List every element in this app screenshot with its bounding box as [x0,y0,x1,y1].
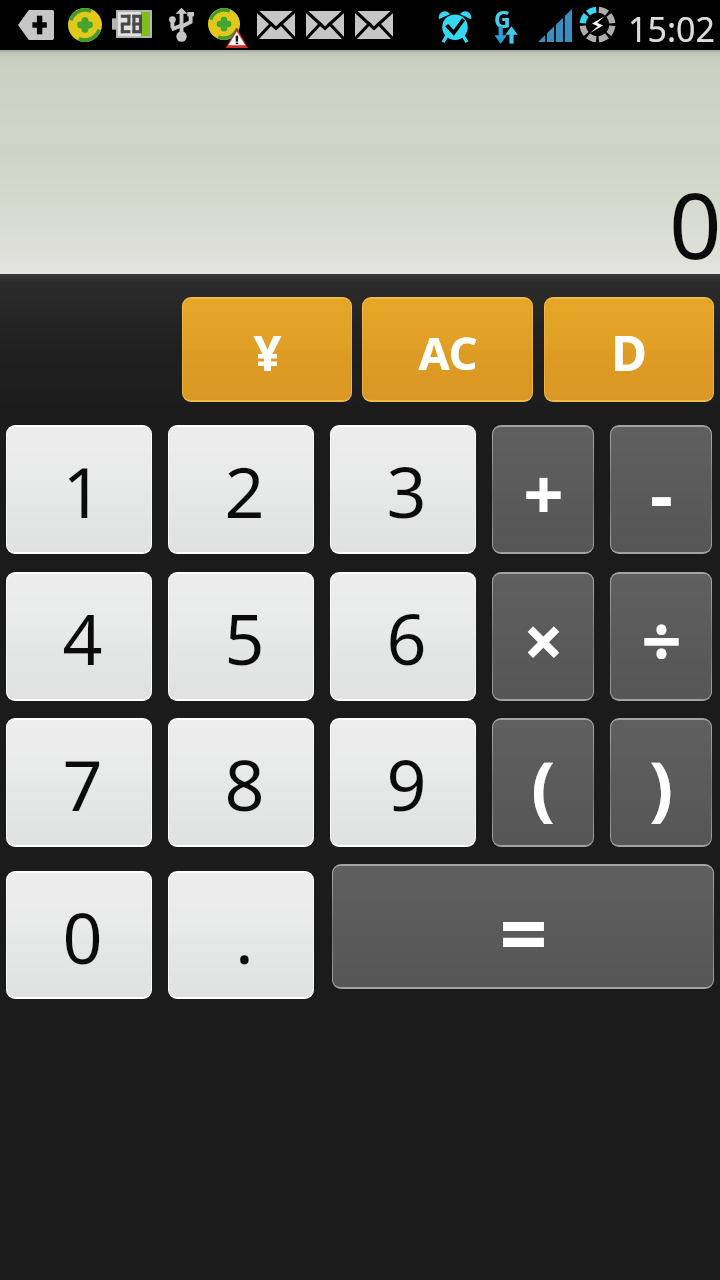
button[interactable]: ( [493,720,593,845]
staticText: . [235,889,254,984]
staticText: 5 [224,590,265,685]
staticText: ( [531,738,555,833]
button[interactable]: AC [363,299,532,400]
staticText: 8 [224,736,265,831]
button[interactable]: + [493,427,593,552]
staticText: 9 [386,736,427,831]
button[interactable]: 3 [331,427,475,552]
staticText: ) [649,738,673,833]
staticText: 6 [386,590,427,685]
staticText: 0 [669,161,720,286]
button[interactable]: × [493,574,593,699]
button[interactable]: 8 [169,720,313,845]
staticText: ¥ [253,319,282,386]
staticText: + [523,445,564,540]
staticText: × [523,592,564,687]
button[interactable]: 9 [331,720,475,845]
button[interactable]: - [611,427,711,552]
staticText: D [611,319,647,386]
button[interactable]: 2 [169,427,313,552]
staticText: = [499,874,548,987]
button[interactable]: . [169,873,313,997]
button[interactable]: ÷ [611,574,711,699]
staticText: 2 [224,443,265,538]
button[interactable]: ¥ [183,299,351,400]
staticText: G [494,3,511,34]
staticText: AC [418,322,478,383]
button[interactable]: 5 [169,574,313,699]
button[interactable]: D [545,299,713,400]
button[interactable]: 1 [7,427,151,552]
staticText: - [650,445,673,540]
staticText: 15:02 [628,6,715,52]
staticText: 4 [62,590,103,685]
button[interactable]: 6 [331,574,475,699]
staticText: 1 [62,443,103,538]
staticText: 0 [62,889,103,984]
button[interactable]: 0 [7,873,151,997]
staticText: ÷ [641,592,682,687]
staticText: 7 [62,736,103,831]
button[interactable]: = [333,866,713,987]
button[interactable]: 7 [7,720,151,845]
staticText: 3 [386,443,427,538]
button[interactable]: 4 [7,574,151,699]
button[interactable]: ) [611,720,711,845]
